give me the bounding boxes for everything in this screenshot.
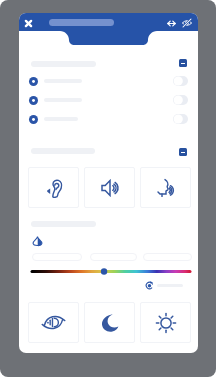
button[interactable]: Dark theme (84, 302, 135, 343)
button[interactable]: Resize (165, 17, 177, 29)
button[interactable] (29, 94, 109, 106)
button[interactable]: Brightness (140, 302, 191, 343)
button[interactable]: Opacity (30, 234, 44, 248)
button[interactable]: Speech (140, 167, 191, 208)
button[interactable]: Contrast (28, 302, 79, 343)
button[interactable]: Preset (143, 253, 192, 261)
button[interactable] (29, 75, 109, 87)
button[interactable]: Preset (90, 253, 137, 261)
button[interactable]: Volume (84, 167, 135, 208)
button[interactable]: Hearing (28, 167, 79, 208)
button[interactable]: Toggle (172, 93, 191, 107)
button[interactable]: Collapse section (179, 148, 187, 156)
button[interactable]: Toggle (172, 112, 191, 126)
button[interactable]: Preset (32, 253, 82, 261)
button[interactable]: Colour temperature (30, 265, 192, 278)
button[interactable]: Collapse section (179, 59, 187, 67)
button[interactable]: Toggle (172, 74, 191, 88)
button[interactable]: Reset (145, 279, 190, 291)
button[interactable]: Hide preview (181, 17, 193, 29)
button[interactable] (29, 113, 109, 125)
button[interactable]: Close (22, 17, 34, 29)
